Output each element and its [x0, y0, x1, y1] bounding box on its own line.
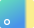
button[interactable]: Record [5, 20, 9, 24]
